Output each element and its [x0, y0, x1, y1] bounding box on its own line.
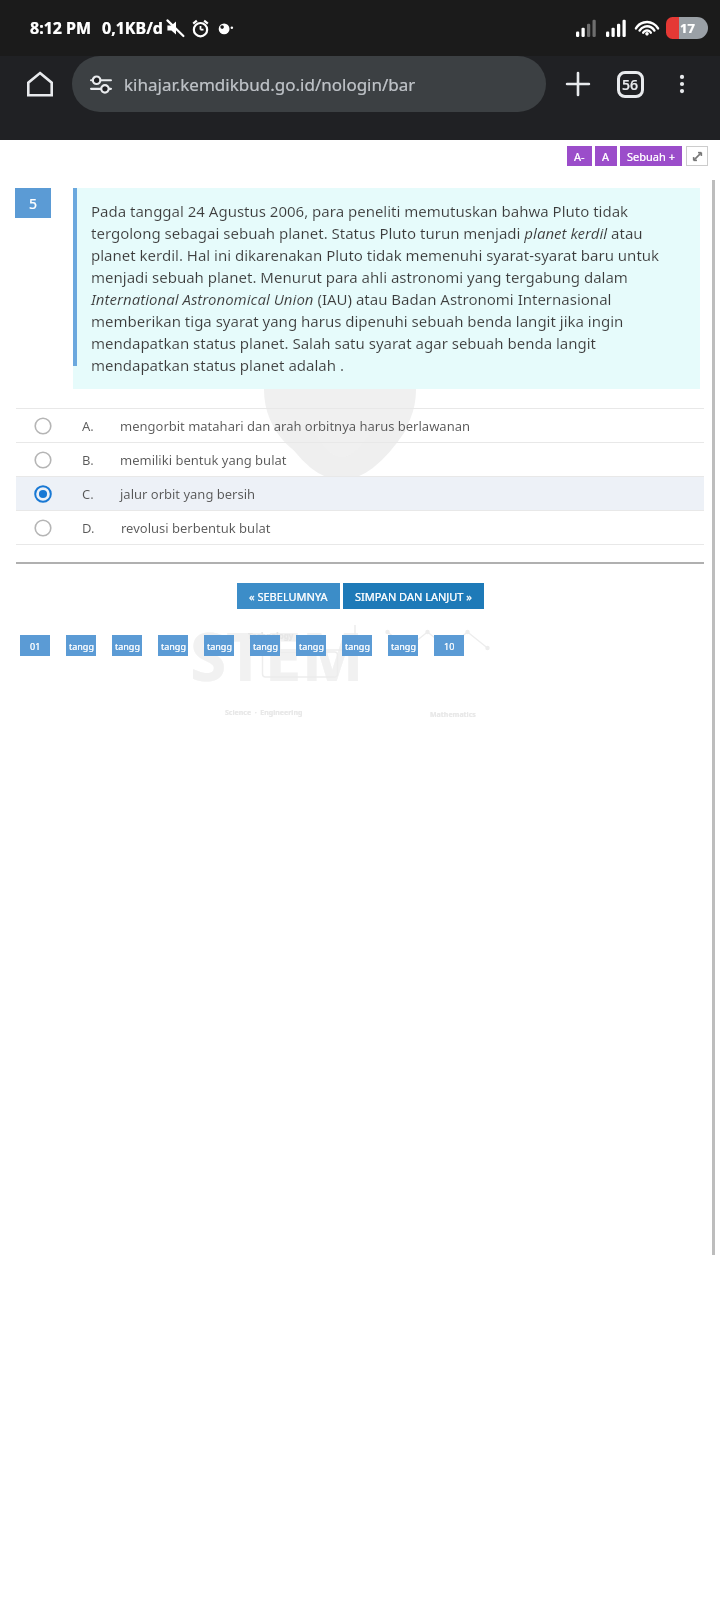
staticText: revolusi berbentuk bulat [121, 519, 271, 537]
staticText: kihajar.kemdikbud.go.id/nologin/bar [124, 73, 416, 96]
staticText: tangg [207, 640, 232, 652]
staticText: 10 [444, 640, 455, 652]
staticText: 5 [29, 194, 38, 213]
staticText: mengorbit matahari dan arah orbitnya har… [120, 417, 471, 435]
staticText: tangg [299, 640, 324, 652]
button[interactable]: tangg [158, 635, 188, 656]
staticText: Sebuah + [627, 149, 675, 164]
staticText: 01 [30, 640, 41, 652]
button[interactable]: tangg [342, 635, 372, 656]
staticText: jalur orbit yang bersih [120, 485, 256, 503]
staticText: tangg [253, 640, 278, 652]
button[interactable]: New tab [554, 60, 602, 108]
staticText: B. [82, 451, 94, 469]
button[interactable]: tangg [388, 635, 418, 656]
button[interactable]: « SEBELUMNYA [237, 583, 340, 609]
staticText: A. [82, 417, 94, 435]
staticText: Technology [248, 630, 294, 641]
button[interactable]: Home [14, 58, 66, 110]
button[interactable]: tangg [250, 635, 280, 656]
button[interactable]: B. [16, 443, 704, 476]
staticText: Science · Engineering [225, 708, 303, 718]
staticText: A [602, 149, 610, 164]
button[interactable]: More options [658, 60, 706, 108]
staticText: 8:12 PM [30, 17, 92, 39]
button[interactable]: A [595, 146, 617, 166]
button[interactable]: Sebuah + [620, 146, 682, 166]
staticText: Pada tanggal 24 Agustus 2006, para penel… [91, 201, 690, 376]
staticText: memiliki bentuk yang bulat [120, 451, 287, 469]
staticText: 56 [622, 75, 639, 94]
staticText: KIHAJAR [212, 315, 357, 361]
button[interactable]: tangg [66, 635, 96, 656]
staticText: tangg [345, 640, 370, 652]
staticText: tangg [161, 640, 186, 652]
button[interactable]: 01 [20, 635, 50, 656]
staticText: A- [574, 149, 585, 164]
button[interactable]: kihajar.kemdikbud.go.id/nologin/bar [72, 56, 546, 112]
staticText: Mathematics [430, 710, 476, 720]
staticText: tangg [115, 640, 140, 652]
staticText: SIMPAN DAN LANJUT » [355, 589, 472, 604]
button[interactable]: SIMPAN DAN LANJUT » [343, 583, 484, 609]
staticText: STEM [190, 610, 364, 700]
button[interactable]: tangg [112, 635, 142, 656]
staticText: D. [82, 519, 95, 537]
staticText: C. [82, 485, 94, 503]
button[interactable]: D. [16, 511, 704, 544]
button[interactable]: tangg [204, 635, 234, 656]
staticText: 0,1KB/d [102, 17, 163, 39]
staticText: « SEBELUMNYA [249, 589, 328, 604]
staticText: tangg [391, 640, 416, 652]
button[interactable]: A. [16, 409, 704, 442]
button[interactable]: C. [16, 477, 704, 510]
button[interactable]: Fullscreen [686, 146, 708, 166]
button[interactable]: A- [567, 146, 592, 166]
button[interactable]: tangg [296, 635, 326, 656]
button[interactable]: 10 [434, 635, 464, 656]
staticText: tangg [69, 640, 94, 652]
button[interactable]: Tabs, 56 open [606, 60, 654, 108]
staticText: 17 [680, 19, 695, 37]
